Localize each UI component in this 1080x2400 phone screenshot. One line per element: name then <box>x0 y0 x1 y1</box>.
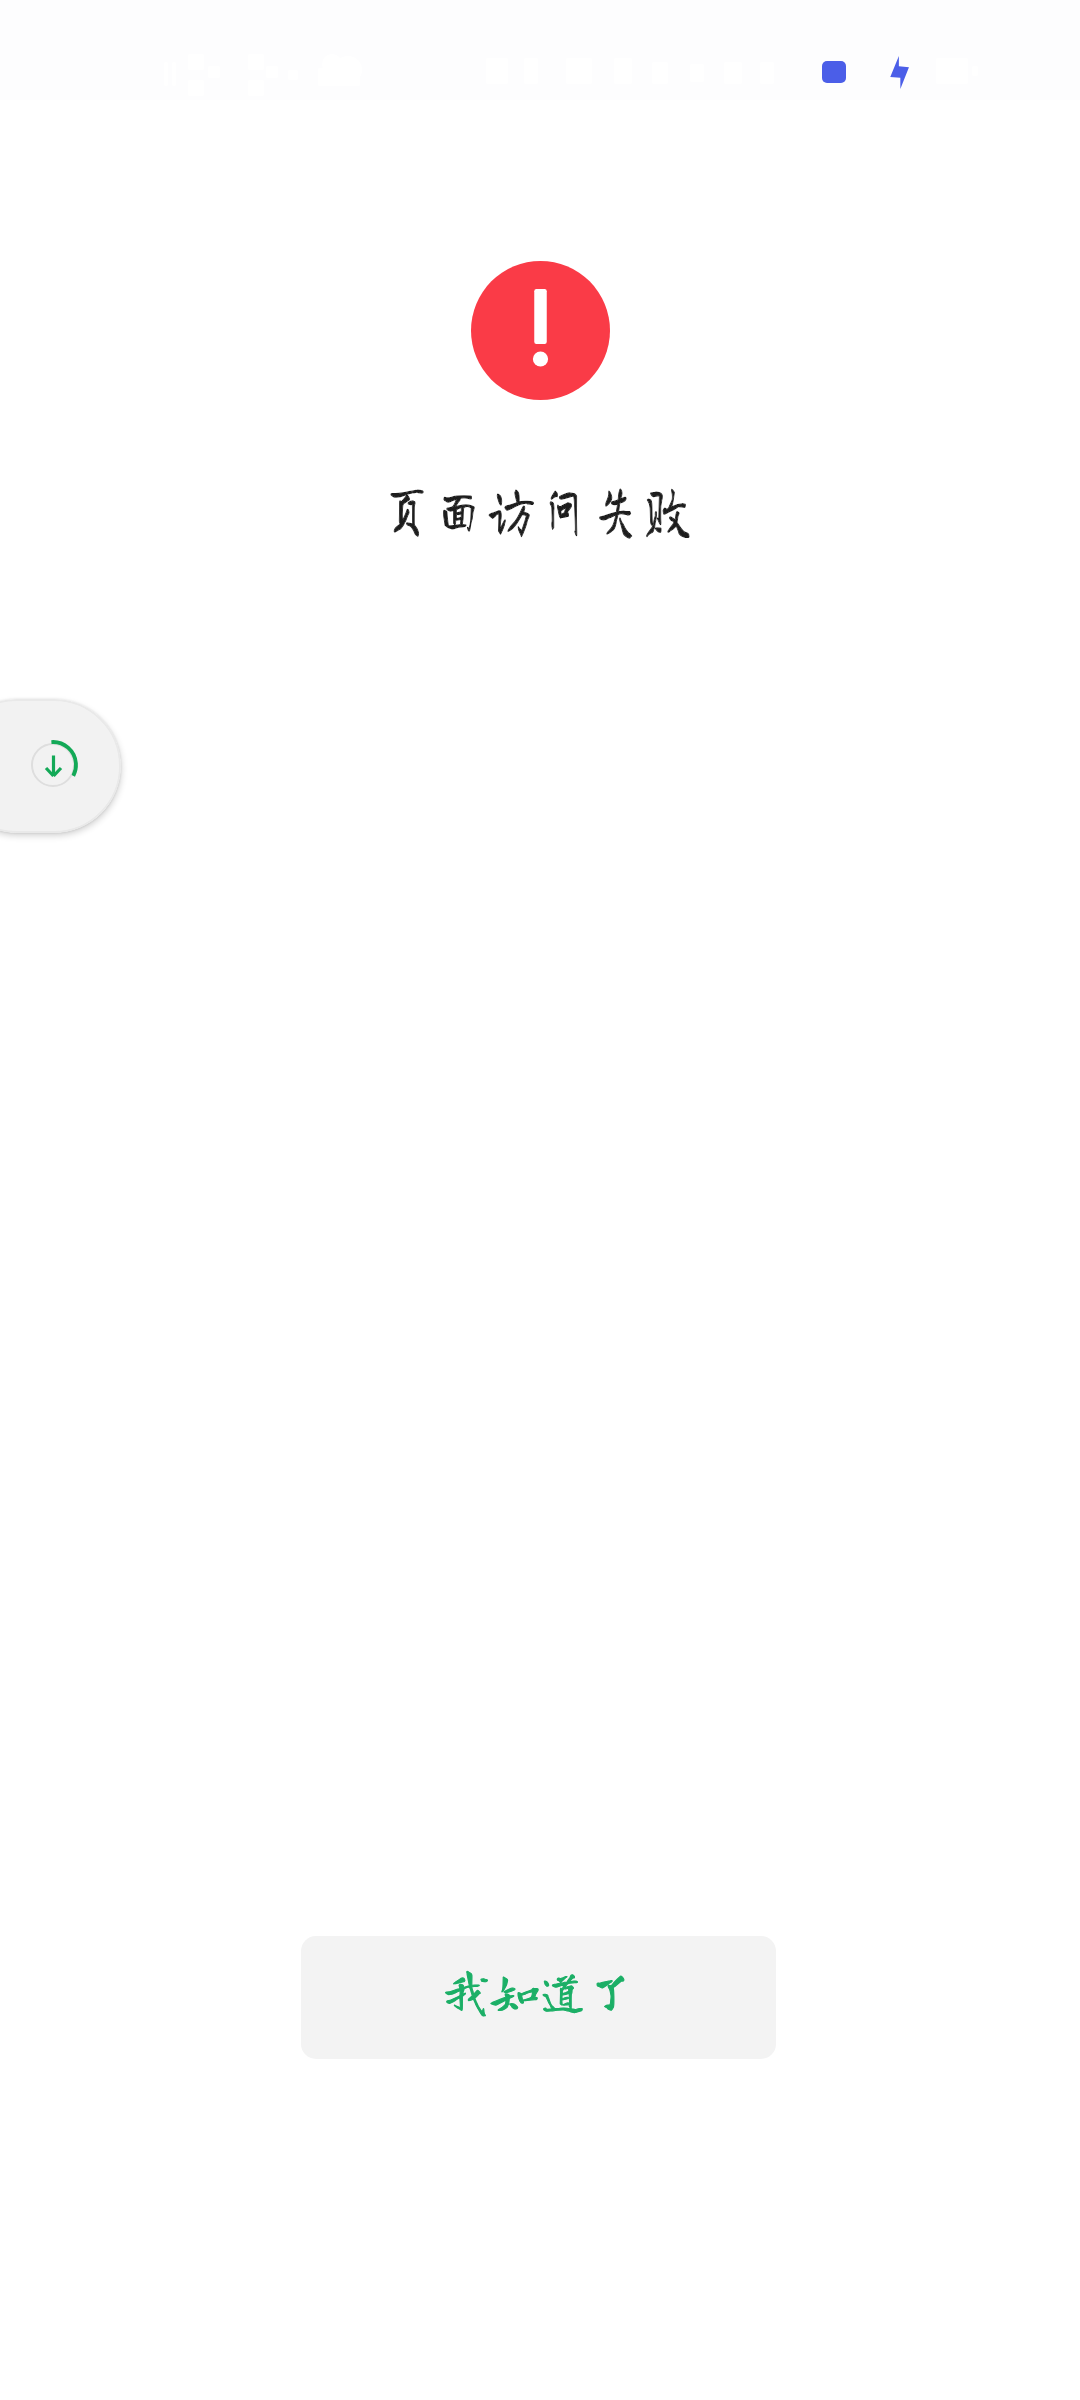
button[interactable]: Download progress <box>0 699 121 833</box>
staticText: 我知道了 <box>442 1966 635 2014</box>
other: Charging <box>889 56 910 89</box>
staticText: 页面访问失败 <box>383 476 697 541</box>
staticText: 我知道了 <box>442 1966 635 2014</box>
other: Screen recording <box>822 61 846 83</box>
button[interactable]: 我知道了 <box>301 1936 776 2059</box>
staticText: 页面访问失败 <box>383 476 697 541</box>
